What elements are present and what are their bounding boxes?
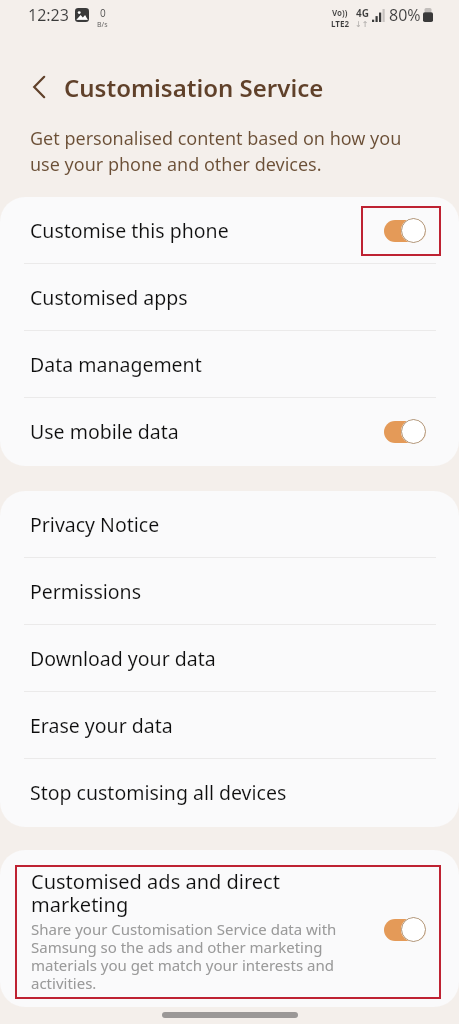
button[interactable]: Back [24,70,54,104]
staticText: Vo)) [332,7,348,18]
staticText: Get personalised content based on how yo… [30,126,406,176]
staticText: Use mobile data [30,418,179,445]
staticText: Data management [30,351,202,378]
staticText: 0 [100,6,106,20]
button[interactable]: Permissions [0,558,459,625]
staticText: Permissions [30,578,142,605]
button[interactable]: Customised apps [0,264,459,331]
button[interactable]: Data management [0,331,459,398]
staticText: 4G [356,6,369,20]
staticText: 12:23 [28,4,69,26]
staticText: B/s [97,20,108,30]
button[interactable]: Customised ads and direct marketing [15,865,441,999]
button[interactable]: Toggle [384,218,426,243]
staticText: Customise this phone [30,217,229,244]
staticText: Download your data [30,645,216,672]
staticText: Erase your data [30,712,173,739]
staticText: LTE2 [331,18,349,29]
button[interactable]: Privacy Notice [0,491,459,558]
button[interactable]: Download your data [0,625,459,692]
button[interactable]: Toggle [384,419,426,444]
staticText: Customised apps [30,284,188,311]
staticText: Customised ads and direct marketing [31,868,321,918]
button[interactable]: Erase your data [0,692,459,759]
button[interactable]: Use mobile data [0,398,459,465]
button[interactable]: Customise this phone [0,197,459,264]
staticText: Customisation Service [64,71,324,104]
button[interactable]: Toggle [384,917,426,942]
staticText: Share your Customisation Service data wi… [31,919,339,993]
staticText: 80% [389,4,421,26]
staticText: Privacy Notice [30,511,160,538]
staticText: Stop customising all devices [30,779,287,806]
staticText: ↓↑ [355,20,369,29]
button[interactable]: Stop customising all devices [0,759,459,826]
